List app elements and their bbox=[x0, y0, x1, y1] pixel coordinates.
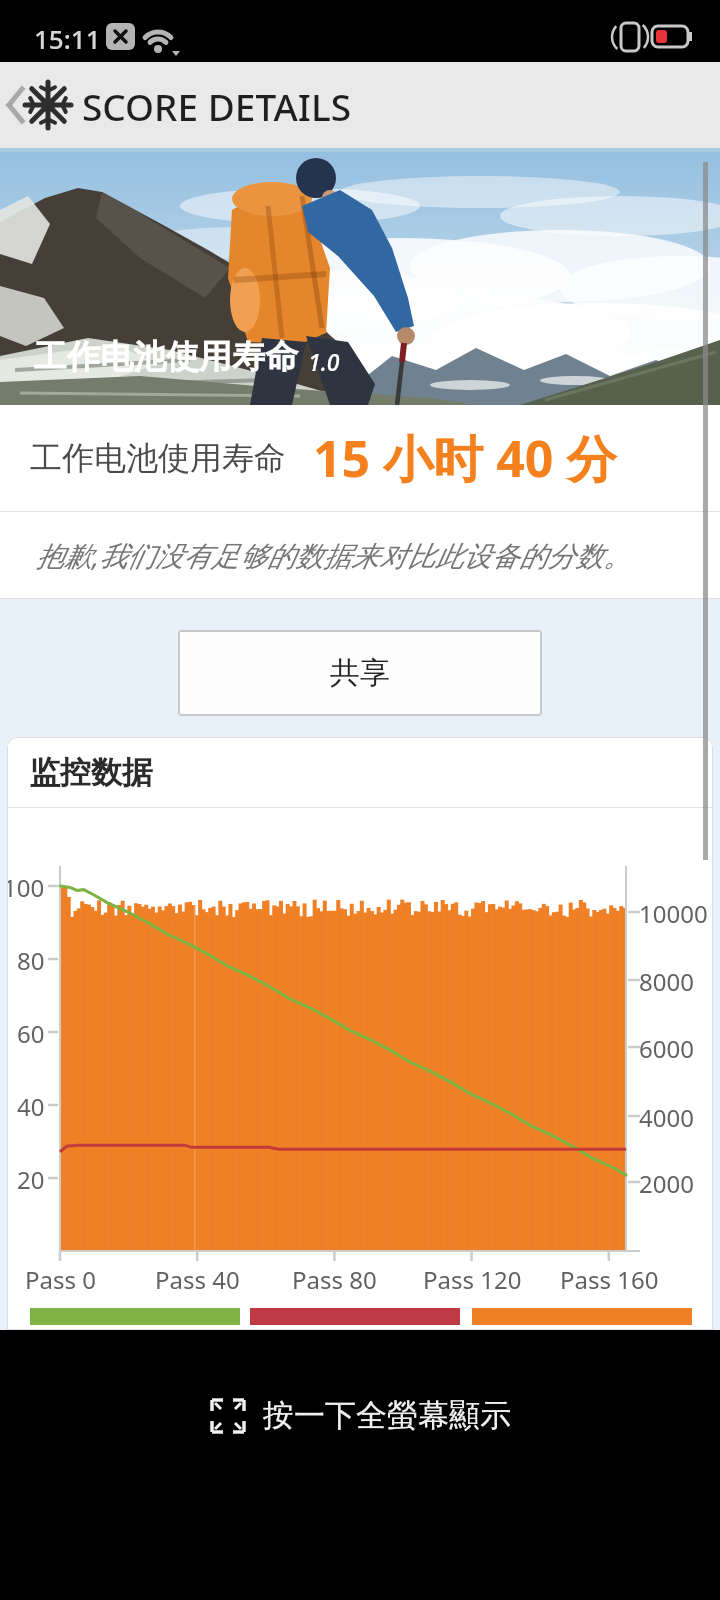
staticText: 10000 bbox=[639, 897, 708, 930]
staticText: 共享 bbox=[330, 654, 390, 692]
button[interactable]: 工作电池使用寿命 bbox=[0, 148, 720, 405]
staticText: 监控数据 bbox=[29, 753, 153, 792]
staticText: 1.0 bbox=[308, 346, 340, 377]
staticText: 工作电池使用寿命 bbox=[34, 336, 298, 378]
button[interactable]: SCORE DETAILS bbox=[0, 62, 720, 148]
staticText: 抱歉,我们没有足够的数据来对比此设备的分数。 bbox=[36, 536, 632, 574]
staticText: Pass 160 bbox=[560, 1263, 659, 1296]
staticText: 80 bbox=[17, 944, 45, 977]
staticText: 15 小时 40 分 bbox=[313, 424, 617, 492]
staticText: Pass 80 bbox=[292, 1263, 377, 1296]
staticText: 40 bbox=[17, 1090, 45, 1123]
button[interactable]: 按一下全螢幕顯示 bbox=[0, 1396, 720, 1435]
staticText: Pass 40 bbox=[155, 1263, 240, 1296]
staticText: 按一下全螢幕顯示 bbox=[263, 1396, 511, 1435]
staticText: 60 bbox=[17, 1017, 45, 1050]
staticText: SCORE DETAILS bbox=[82, 81, 352, 131]
staticText: 8000 bbox=[639, 965, 694, 998]
staticText: 100 bbox=[7, 871, 45, 904]
button[interactable]: 共享 bbox=[178, 630, 542, 716]
staticText: 4000 bbox=[639, 1101, 694, 1134]
staticText: 15:11 bbox=[34, 21, 101, 56]
staticText: 工作电池使用寿命 bbox=[30, 438, 286, 478]
staticText: 6000 bbox=[639, 1032, 694, 1065]
staticText: Pass 120 bbox=[423, 1263, 522, 1296]
staticText: Pass 0 bbox=[25, 1263, 96, 1296]
staticText: 20 bbox=[17, 1163, 45, 1196]
staticText: 2000 bbox=[639, 1167, 694, 1200]
